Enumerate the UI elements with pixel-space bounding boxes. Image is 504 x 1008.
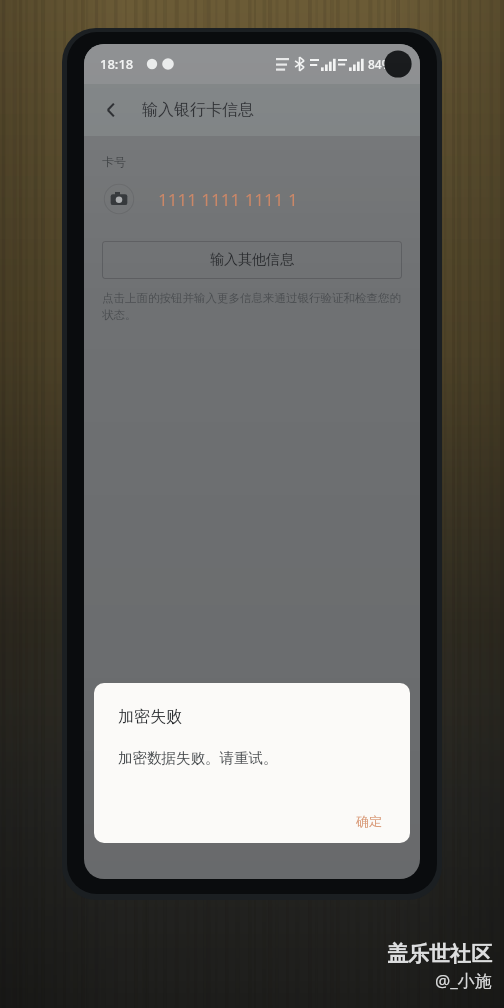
staticText: 确定	[356, 813, 382, 829]
staticText: @_小施	[435, 969, 492, 992]
staticText: 加密数据失败。请重试。	[118, 749, 278, 767]
button[interactable]: Scan card with camera	[102, 182, 136, 216]
staticText: 盖乐世社区	[387, 941, 492, 967]
button[interactable]: 输入其他信息	[102, 241, 402, 279]
staticText: 点击上面的按钮并输入更多信息来通过银行验证和检查您的状态。	[102, 291, 402, 322]
staticText: 输入其他信息	[210, 251, 294, 269]
staticText: 加密失败	[118, 707, 182, 727]
staticText: 84%	[368, 56, 392, 72]
staticText: 输入银行卡信息	[142, 100, 254, 120]
staticText: 卡号	[102, 154, 126, 169]
staticText: 18:18	[100, 55, 134, 73]
button[interactable]: Back	[90, 89, 132, 131]
button[interactable]: 确定	[342, 805, 396, 837]
staticText: 1111 1111 1111 1	[158, 188, 298, 211]
